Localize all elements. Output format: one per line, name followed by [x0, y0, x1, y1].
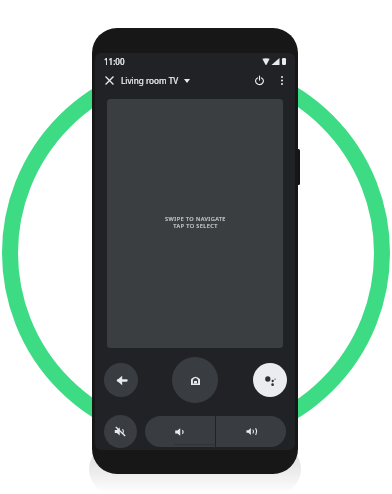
button[interactable]: Power [249, 70, 269, 90]
button[interactable]: Close [99, 70, 119, 90]
button[interactable]: Back [104, 363, 138, 397]
staticText: 11:00 [104, 56, 125, 67]
button[interactable]: Volume down [145, 416, 215, 447]
staticText: SWIPE TO NAVIGATE [165, 215, 226, 223]
button[interactable]: Volume up [216, 416, 286, 447]
button[interactable]: Home [172, 357, 218, 403]
button[interactable]: SWIPE TO NAVIGATE [107, 99, 283, 348]
button[interactable]: Assistant [253, 363, 287, 397]
button[interactable]: Living room TV [121, 75, 190, 86]
button[interactable]: Mute [104, 415, 137, 448]
staticText: TAP TO SELECT [173, 222, 218, 230]
staticText: Living room TV [121, 75, 179, 86]
button[interactable]: More options [272, 70, 292, 90]
